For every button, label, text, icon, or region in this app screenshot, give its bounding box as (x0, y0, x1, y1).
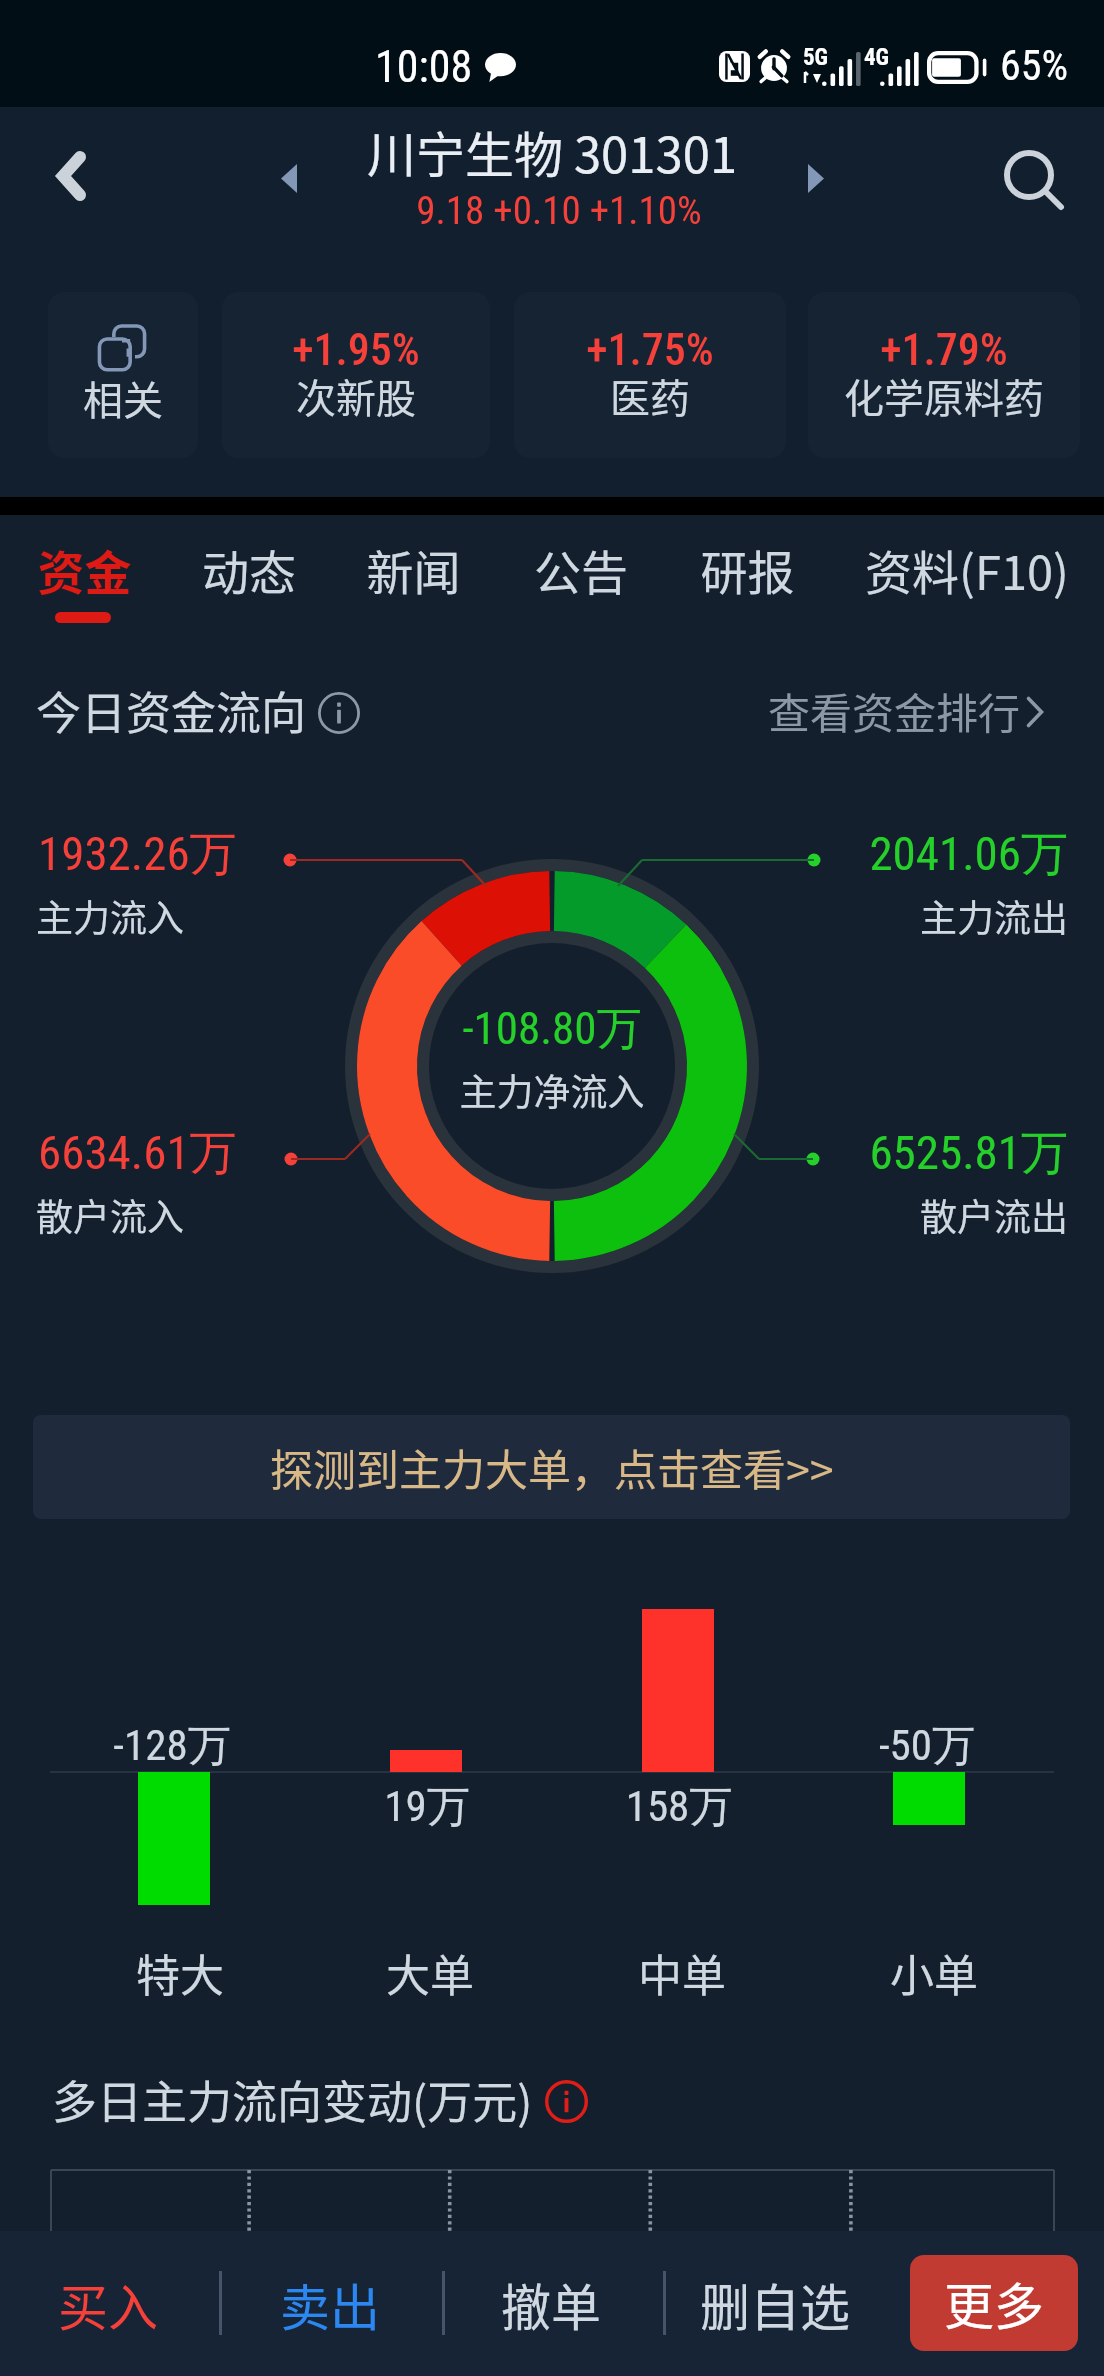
button[interactable]: 相关 (48, 292, 198, 458)
staticText: 多日主力流向变动(万元) (52, 2067, 533, 2132)
staticText: 删自选 (700, 2268, 850, 2340)
staticText: 次新股 (222, 367, 490, 425)
staticText: 更多 (944, 2267, 1044, 2339)
staticText: 买入 (58, 2268, 158, 2340)
button[interactable]: 删自选 (670, 2231, 880, 2376)
staticText: 158万 (479, 1780, 879, 1834)
button[interactable]: 卖出 (247, 2231, 413, 2376)
button[interactable]: 新闻 (345, 525, 482, 625)
staticText: 新闻 (345, 535, 482, 603)
staticText: 9.18 +0.10 +1.10% (309, 188, 809, 234)
staticText: 卖出 (280, 2268, 380, 2340)
button[interactable]: 查看资金排行 (768, 676, 1058, 752)
staticText: +1.95% (222, 324, 490, 376)
button[interactable]: 公告 (513, 525, 649, 625)
staticText: 散户流出 (568, 1188, 1068, 1242)
staticText: 小单 (684, 1941, 1104, 2005)
staticText: 资料(F10) (844, 535, 1090, 603)
staticText: 19万 (227, 1780, 627, 1834)
button[interactable]: 撤单 (468, 2231, 634, 2376)
staticText: 特大 (0, 1941, 430, 2005)
staticText: 6525.81万 (568, 1124, 1068, 1183)
staticText: 撤单 (501, 2268, 601, 2340)
staticText: 公告 (513, 535, 649, 603)
staticText: -128万 (0, 1719, 372, 1773)
staticText: 动态 (180, 535, 318, 603)
staticText: -108.80万 (302, 1001, 802, 1058)
button[interactable]: 资料(F10) (844, 525, 1090, 625)
staticText: 5G (803, 44, 829, 71)
button[interactable]: Back (30, 138, 112, 216)
button[interactable]: 资金 (14, 525, 155, 625)
staticText: 主力净流入 (302, 1063, 802, 1117)
button[interactable]: 动态 (180, 525, 318, 625)
staticText: 相关 (48, 369, 198, 427)
button[interactable]: 买入 (25, 2231, 191, 2376)
staticText: 主力流出 (568, 889, 1068, 943)
staticText: 6634.61万 (38, 1124, 237, 1183)
staticText: +1.75% (514, 324, 786, 376)
staticText: 大单 (180, 1941, 680, 2005)
staticText: 4G (864, 44, 890, 71)
staticText: 研报 (678, 535, 817, 603)
staticText: 散户流入 (36, 1188, 184, 1242)
staticText: 查看资金排行 (768, 680, 1021, 741)
staticText: 主力流入 (36, 889, 184, 943)
staticText: 65% (1000, 41, 1069, 90)
staticText: -50万 (727, 1719, 1104, 1773)
button[interactable]: Search (986, 128, 1078, 222)
button[interactable]: +1.75% (514, 292, 786, 458)
staticText: 医药 (514, 367, 786, 425)
button[interactable]: +1.79% (808, 292, 1080, 458)
button[interactable]: 研报 (678, 525, 817, 625)
button[interactable]: +1.95% (222, 292, 490, 458)
staticText: 资金 (14, 535, 155, 603)
button[interactable]: 探测到主力大单，点击查看>> (33, 1415, 1070, 1519)
button[interactable]: 更多 (910, 2255, 1078, 2351)
staticText: 川宁生物 301301 (302, 116, 802, 187)
staticText: 10:08 (375, 41, 473, 93)
staticText: 2041.06万 (568, 825, 1068, 884)
staticText: 中单 (432, 1941, 932, 2005)
staticText: 化学原料药 (808, 367, 1080, 425)
staticText: 1932.26万 (38, 825, 237, 884)
staticText: +1.79% (808, 324, 1080, 376)
staticText: 今日资金流向 (36, 678, 307, 743)
staticText: 探测到主力大单，点击查看>> (270, 1436, 834, 1498)
